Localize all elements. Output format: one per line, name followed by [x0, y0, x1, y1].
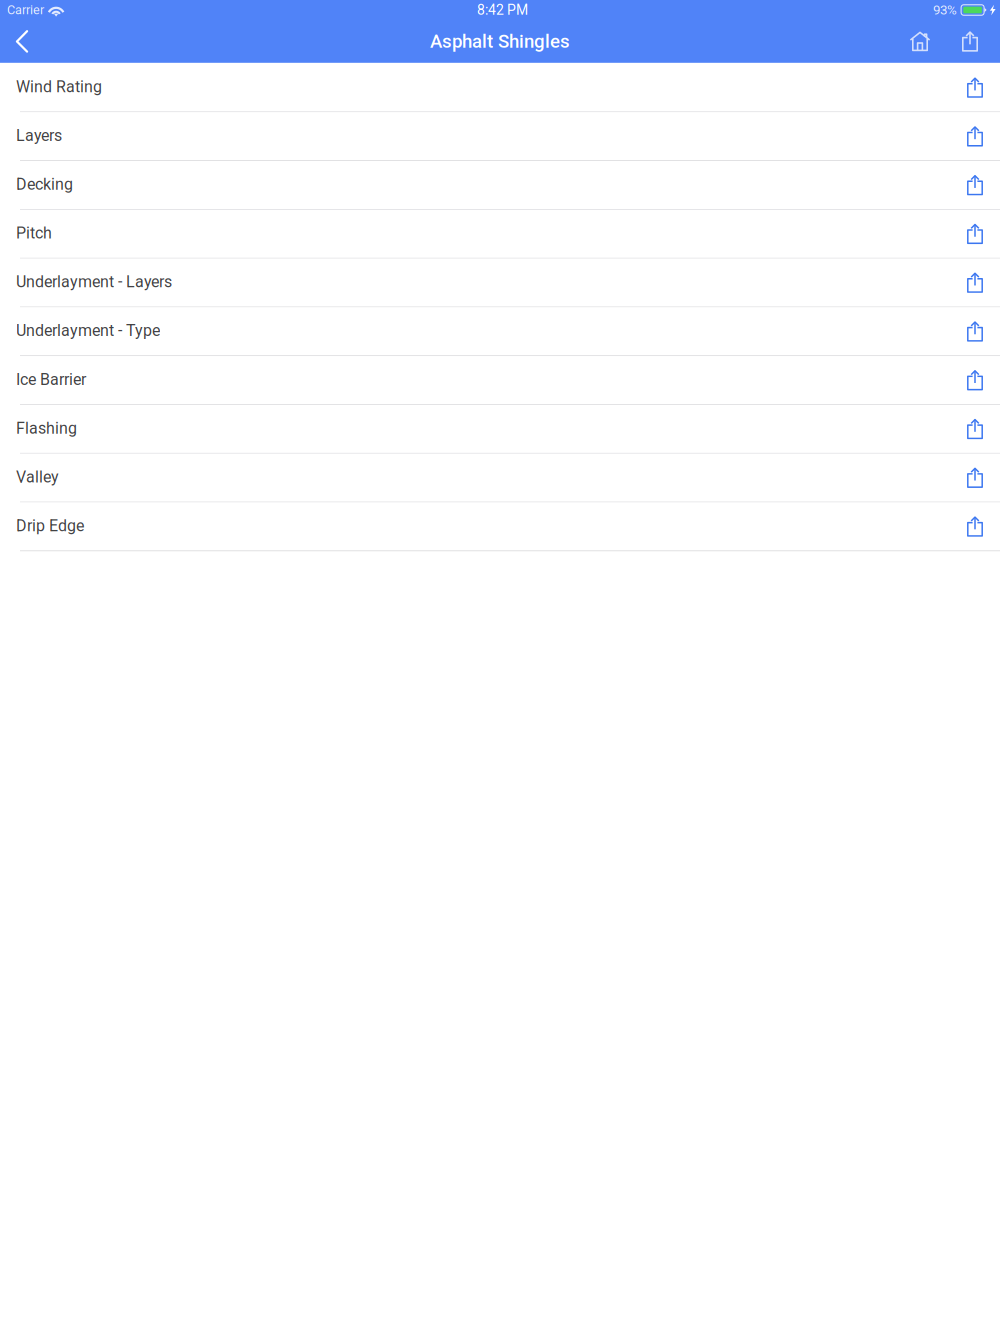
staticText: Drip Edge	[16, 516, 84, 535]
staticText: 8:42 PM	[477, 2, 528, 18]
button[interactable]: Wind Rating	[0, 63, 1000, 112]
staticText: Wind Rating	[16, 77, 102, 96]
button[interactable]: Share Ice Barrier	[966, 370, 984, 391]
button[interactable]: Decking	[0, 161, 1000, 210]
staticText: Valley	[16, 468, 59, 486]
button[interactable]: Drip Edge	[0, 502, 1000, 551]
button[interactable]: Home	[895, 20, 945, 62]
button[interactable]: Share Decking	[966, 174, 984, 195]
button[interactable]: Share	[945, 20, 995, 62]
button[interactable]: Share Layers	[966, 126, 984, 147]
button[interactable]: Share Underlayment - Layers	[966, 272, 984, 293]
staticText: Flashing	[16, 419, 77, 438]
button[interactable]: Share Flashing	[966, 418, 984, 439]
button[interactable]: Valley	[0, 454, 1000, 502]
button[interactable]: Flashing	[0, 405, 1000, 454]
staticText: Pitch	[16, 224, 52, 242]
button[interactable]: Back	[2, 20, 42, 62]
button[interactable]: Share Wind Rating	[966, 77, 984, 98]
staticText: Carrier	[7, 3, 44, 17]
staticText: Underlayment - Type	[16, 321, 160, 340]
button[interactable]: Ice Barrier	[0, 356, 1000, 405]
staticText: Ice Barrier	[16, 370, 86, 389]
button[interactable]: Layers	[0, 112, 1000, 161]
button[interactable]: Underlayment - Type	[0, 307, 1000, 356]
button[interactable]: Underlayment - Layers	[0, 259, 1000, 307]
staticText: Underlayment - Layers	[16, 272, 172, 291]
button[interactable]: Share Valley	[966, 467, 984, 488]
button[interactable]: Share Underlayment - Type	[966, 321, 984, 342]
staticText: 93%	[933, 2, 957, 18]
button[interactable]: Pitch	[0, 210, 1000, 259]
button[interactable]: Share Drip Edge	[966, 516, 984, 537]
button[interactable]: Share Pitch	[966, 223, 984, 244]
staticText: Layers	[16, 126, 62, 145]
staticText: Asphalt Shingles	[430, 30, 570, 52]
staticText: Decking	[16, 175, 73, 194]
